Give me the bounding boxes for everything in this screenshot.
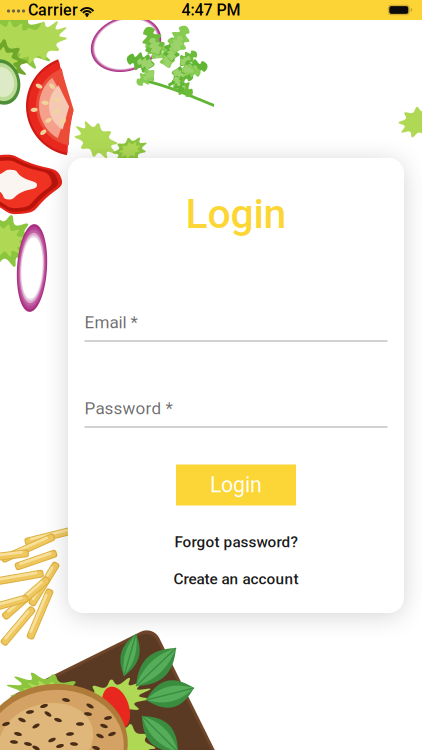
- staticText: Create an account: [173, 570, 298, 588]
- staticText: Login: [185, 190, 286, 238]
- button[interactable]: Login: [176, 464, 296, 505]
- staticText: 4:47 PM: [181, 1, 240, 19]
- staticText: Password *: [84, 398, 172, 418]
- staticText: Forgot password?: [174, 533, 297, 551]
- staticText: Carrier: [28, 1, 78, 19]
- button[interactable]: Create an account: [163, 565, 308, 593]
- staticText: Email *: [84, 312, 137, 332]
- button[interactable]: Forgot password?: [164, 528, 307, 556]
- staticText: Login: [210, 472, 262, 497]
